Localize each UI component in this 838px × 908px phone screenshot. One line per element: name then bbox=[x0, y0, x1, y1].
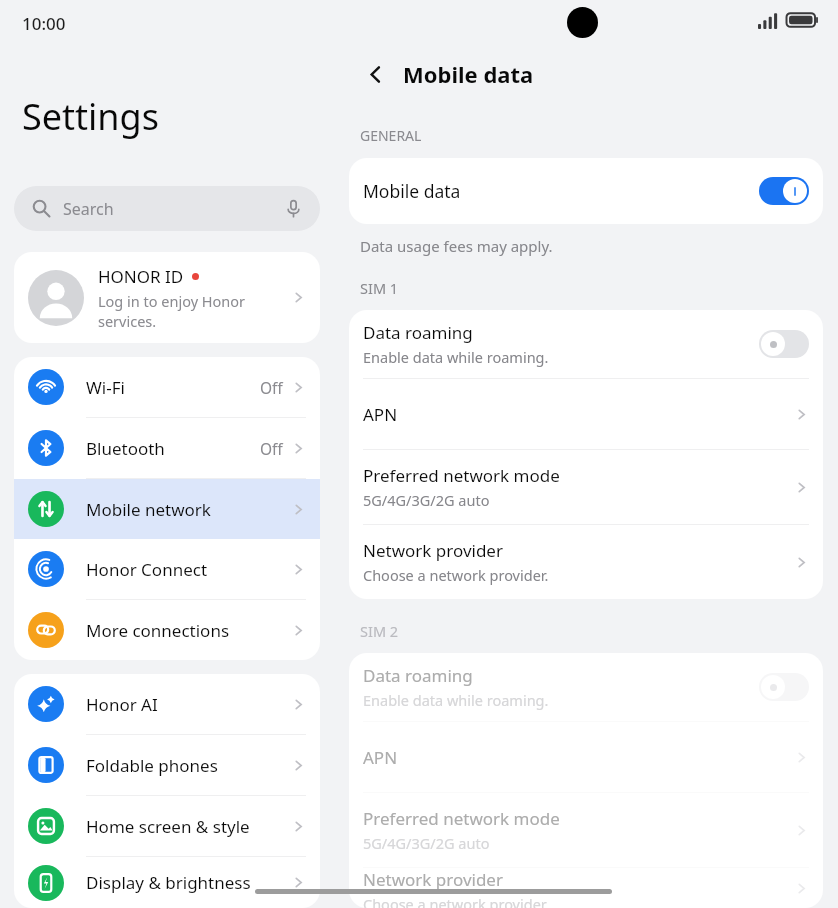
button[interactable]: Preferred network mode bbox=[349, 793, 823, 867]
button[interactable]: Honor Connect bbox=[14, 539, 320, 599]
staticText: 5G/4G/3G/2G auto bbox=[363, 833, 490, 853]
staticText: Preferred network mode bbox=[363, 807, 560, 830]
button[interactable]: Home screen & style bbox=[14, 796, 320, 856]
staticText: Enable data while roaming. bbox=[363, 690, 549, 710]
staticText: Choose a network provider. bbox=[363, 894, 549, 908]
staticText: 10:00 bbox=[22, 12, 66, 35]
staticText: Enable data while roaming. bbox=[363, 347, 549, 367]
button[interactable]: Back bbox=[360, 59, 390, 89]
staticText: Display & brightness bbox=[86, 871, 291, 894]
button[interactable]: Mobile network bbox=[14, 479, 320, 539]
button[interactable]: Mobile data bbox=[349, 158, 823, 224]
staticText: Wi-Fi bbox=[86, 376, 260, 399]
button[interactable]: HONOR ID bbox=[14, 252, 320, 343]
staticText: Bluetooth bbox=[86, 437, 260, 460]
button[interactable]: Network provider bbox=[349, 525, 823, 599]
button[interactable]: Bluetooth bbox=[14, 418, 320, 478]
staticText: Choose a network provider. bbox=[363, 565, 549, 585]
staticText: Data roaming bbox=[363, 321, 473, 344]
staticText: 5G/4G/3G/2G auto bbox=[363, 490, 490, 510]
staticText: Foldable phones bbox=[86, 754, 291, 777]
staticText: More connections bbox=[86, 619, 291, 642]
button[interactable]: APN bbox=[349, 722, 823, 792]
staticText: APN bbox=[363, 403, 398, 426]
staticText: Preferred network mode bbox=[363, 464, 560, 487]
staticText: Honor Connect bbox=[86, 558, 291, 581]
button[interactable]: Foldable phones bbox=[14, 735, 320, 795]
button[interactable]: Toggle bbox=[759, 673, 809, 701]
button[interactable]: Toggle bbox=[759, 330, 809, 358]
staticText: Data usage fees may apply. bbox=[360, 236, 553, 256]
button[interactable]: Toggle bbox=[759, 177, 809, 205]
staticText: Data roaming bbox=[363, 664, 473, 687]
staticText: Network provider bbox=[363, 539, 503, 562]
staticText: APN bbox=[363, 746, 398, 769]
staticText: Settings bbox=[22, 92, 159, 141]
staticText: Mobile network bbox=[86, 498, 291, 521]
staticText: Mobile data bbox=[403, 59, 534, 89]
staticText: Network provider bbox=[363, 868, 503, 891]
button[interactable]: More connections bbox=[14, 600, 320, 660]
staticText: SIM 1 bbox=[360, 278, 399, 298]
button[interactable]: Display & brightness bbox=[14, 857, 320, 908]
button[interactable]: Wi-Fi bbox=[14, 357, 320, 417]
button[interactable]: Network provider bbox=[349, 868, 823, 908]
staticText: Off bbox=[260, 377, 283, 398]
button[interactable]: Honor AI bbox=[14, 674, 320, 734]
staticText: GENERAL bbox=[360, 126, 422, 145]
staticText: Honor AI bbox=[86, 693, 291, 716]
button[interactable]: Data roaming bbox=[349, 653, 823, 721]
staticText: SIM 2 bbox=[360, 621, 399, 641]
staticText: Mobile data bbox=[363, 179, 759, 203]
button[interactable]: Preferred network mode bbox=[349, 450, 823, 524]
button[interactable]: Data roaming bbox=[349, 310, 823, 378]
staticText: Log in to enjoy Honor services. bbox=[98, 291, 246, 331]
other: Voice search bbox=[284, 199, 303, 218]
staticText: Home screen & style bbox=[86, 815, 291, 838]
staticText: Search bbox=[63, 198, 114, 220]
staticText: Off bbox=[260, 438, 283, 459]
button[interactable]: Search bbox=[14, 186, 320, 231]
button[interactable]: APN bbox=[349, 379, 823, 449]
staticText: HONOR ID bbox=[98, 265, 184, 288]
